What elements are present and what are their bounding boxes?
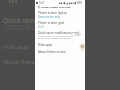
staticText: Phone screen grid [38,21,64,25]
staticText: notification panel from [3,27,37,31]
staticText: to open the notification panel. [38,37,71,40]
staticText: Home screen only [38,15,60,19]
staticText: Quick open notification panel [38,31,80,35]
staticText: Hide apps [3,43,30,51]
staticText: About Home screen [38,50,66,54]
staticText: HOME SCREEN SETTINGS [41,5,71,8]
staticText: Swipe down on the Home screen [38,35,74,38]
button[interactable]: Phone screen grid [35,20,85,28]
staticText: ▪▪ ● ▲ ◆◆ ▮▮ 88% [59,1,83,5]
staticText: 4 x 5 [38,25,44,29]
button[interactable]: Quick open notification panel [35,30,85,41]
staticText: Phone screen layout [38,11,67,15]
button[interactable]: About Home screen [35,49,85,55]
button[interactable]: Back [36,4,41,9]
staticText: 9:41 [39,1,45,5]
staticText: Hide apps [38,43,53,47]
button[interactable]: Hide apps [35,42,85,48]
staticText: Swipe down to open the [3,24,39,28]
staticText: About Home scr [3,58,46,66]
staticText: Quick open [3,16,38,25]
button[interactable]: Phone screen layout [35,10,85,18]
